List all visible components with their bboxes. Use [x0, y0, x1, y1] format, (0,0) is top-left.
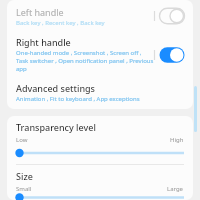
staticText: Left handle: [16, 6, 64, 18]
button[interactable]: Advanced settings: [7, 77, 193, 109]
staticText: Back key , Recent key , Back key: [16, 19, 105, 27]
button[interactable]: Right handle: [7, 31, 193, 77]
button[interactable]: Left handle: [7, 0, 193, 31]
staticText: Small: [16, 185, 32, 193]
staticText: Size: [16, 170, 33, 182]
staticText: Large: [167, 185, 184, 193]
staticText: Advanced settings: [16, 82, 95, 94]
button[interactable]: Toggle off: [155, 5, 189, 27]
staticText: Transparency level: [16, 121, 96, 133]
button[interactable]: [16, 148, 184, 158]
staticText: Low: [16, 136, 28, 144]
staticText: One-handed mode , Screenshot , Screen of…: [16, 49, 155, 73]
staticText: High: [170, 136, 184, 144]
button[interactable]: [16, 197, 184, 198]
staticText: Right handle: [16, 36, 71, 48]
button[interactable]: Toggle on: [155, 44, 189, 66]
staticText: Animation , Fit to keyboard , App except…: [16, 95, 140, 103]
